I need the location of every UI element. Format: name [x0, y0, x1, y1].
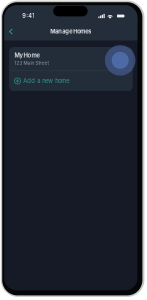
- staticText: 123 Main Street: [14, 60, 48, 66]
- staticText: Manage Homes: [50, 28, 91, 35]
- button[interactable]: Add a new home: [9, 71, 133, 91]
- button[interactable]: Back: [5, 26, 16, 37]
- staticText: Add a new home: [23, 77, 69, 84]
- button[interactable]: My Home: [9, 47, 133, 70]
- staticText: My Home: [14, 52, 39, 59]
- staticText: 9:41: [22, 13, 34, 19]
